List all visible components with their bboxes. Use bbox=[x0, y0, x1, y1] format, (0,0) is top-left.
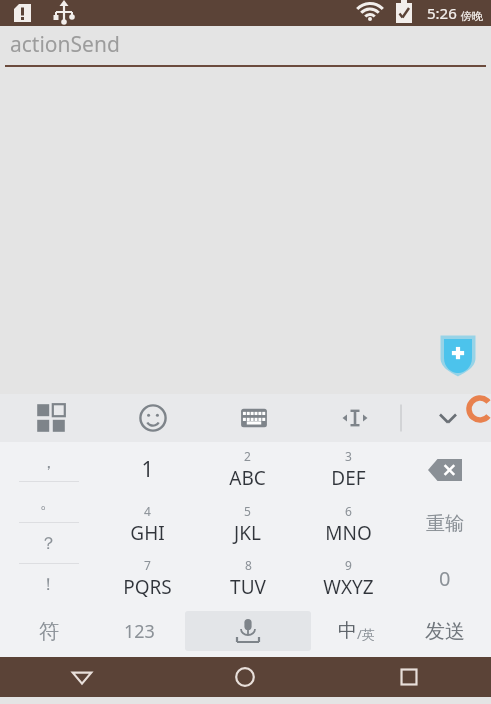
staticText: ABC bbox=[229, 465, 266, 491]
button[interactable]: Back bbox=[0, 657, 163, 697]
staticText: 4 bbox=[144, 503, 151, 519]
staticText: 9 bbox=[345, 557, 352, 573]
button[interactable]: ， bbox=[0, 442, 97, 482]
button[interactable]: 符 bbox=[0, 605, 97, 657]
staticText: 7 bbox=[144, 557, 151, 573]
staticText: 5:26 bbox=[427, 3, 457, 23]
staticText: 中 bbox=[338, 619, 357, 643]
button[interactable]: 1 bbox=[97, 442, 197, 497]
staticText: 发送 bbox=[425, 619, 465, 644]
staticText: 符 bbox=[39, 619, 59, 644]
staticText: 6 bbox=[345, 503, 352, 519]
button[interactable]: 重输 bbox=[399, 497, 491, 551]
staticText: 123 bbox=[124, 619, 155, 644]
staticText: 0 bbox=[439, 565, 451, 592]
staticText: DEF bbox=[331, 465, 366, 491]
button[interactable]: ！ bbox=[0, 564, 97, 605]
button[interactable]: Home bbox=[163, 657, 327, 697]
button[interactable]: ？ bbox=[0, 523, 97, 564]
staticText: TUV bbox=[230, 574, 266, 600]
button[interactable]: 4 bbox=[97, 497, 197, 551]
staticText: JKL bbox=[234, 520, 261, 546]
button[interactable]: 6 bbox=[298, 497, 399, 551]
staticText: ， bbox=[40, 452, 57, 473]
button[interactable]: 。 bbox=[0, 482, 97, 523]
staticText: 重输 bbox=[426, 512, 464, 536]
button[interactable]: 0 bbox=[399, 551, 491, 605]
button[interactable]: Hide keyboard bbox=[405, 394, 491, 442]
button[interactable]: Recents bbox=[327, 657, 491, 697]
button[interactable]: 5 bbox=[197, 497, 298, 551]
button[interactable]: 7 bbox=[97, 551, 197, 605]
staticText: ？ bbox=[40, 533, 57, 554]
staticText: GHI bbox=[130, 520, 165, 546]
staticText: 2 bbox=[244, 448, 251, 464]
button[interactable]: 中 bbox=[314, 605, 399, 657]
staticText: actionSend bbox=[10, 30, 120, 59]
staticText: /英 bbox=[357, 625, 375, 643]
button[interactable]: 123 bbox=[97, 605, 182, 657]
staticText: 傍晚 bbox=[461, 9, 483, 23]
staticText: 8 bbox=[245, 557, 252, 573]
staticText: ！ bbox=[40, 574, 57, 595]
button[interactable]: Text cursor bbox=[304, 394, 405, 442]
button[interactable]: 发送 bbox=[399, 605, 491, 657]
button[interactable]: actionSend bbox=[0, 26, 491, 67]
button[interactable]: Space / voice input bbox=[185, 611, 311, 651]
staticText: PQRS bbox=[123, 574, 172, 600]
staticText: 。 bbox=[40, 492, 57, 513]
button[interactable]: Keyboard layout bbox=[203, 394, 304, 442]
button[interactable]: 2 bbox=[197, 442, 298, 497]
button[interactable]: 3 bbox=[298, 442, 399, 497]
button[interactable]: Security shield bbox=[440, 335, 476, 377]
staticText: 3 bbox=[345, 448, 352, 464]
staticText: 1 bbox=[141, 455, 154, 484]
button[interactable]: 8 bbox=[197, 551, 298, 605]
staticText: WXYZ bbox=[323, 574, 374, 600]
button[interactable]: Backspace bbox=[399, 442, 491, 497]
button[interactable]: Apps bbox=[0, 394, 102, 442]
staticText: MNO bbox=[325, 520, 372, 546]
button[interactable]: Emoji bbox=[102, 394, 203, 442]
staticText: 5 bbox=[244, 503, 251, 519]
button[interactable]: 9 bbox=[298, 551, 399, 605]
